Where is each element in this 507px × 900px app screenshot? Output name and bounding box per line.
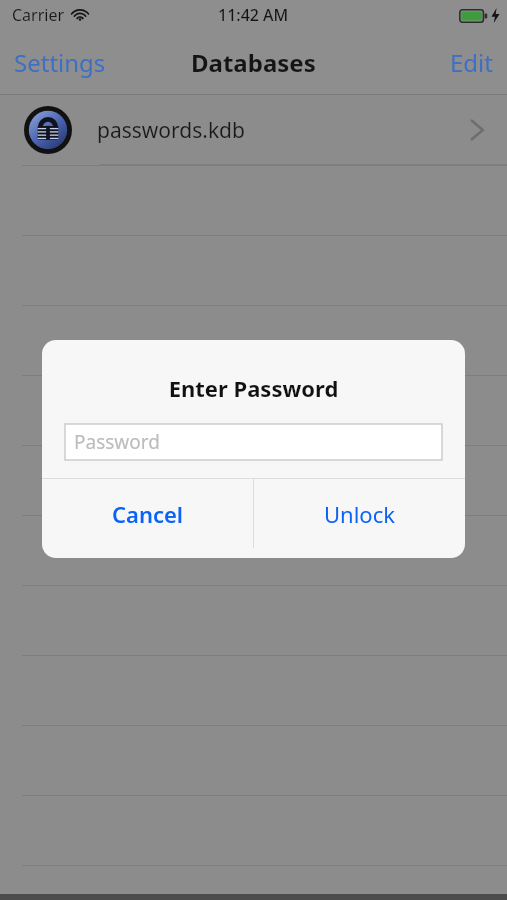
button[interactable]: Settings <box>14 46 106 79</box>
staticText: Edit <box>450 46 493 79</box>
staticText: Unlock <box>324 499 395 529</box>
staticText: passwords.kdb <box>97 116 245 145</box>
staticText: 11:42 AM <box>218 4 289 26</box>
button[interactable]: Unlock <box>254 479 465 548</box>
button[interactable]: Cancel <box>42 479 253 548</box>
button[interactable]: Password <box>65 424 442 460</box>
staticText: Enter Password <box>42 373 465 403</box>
staticText: Databases <box>191 46 316 79</box>
button[interactable]: passwords.kdb <box>0 95 507 165</box>
staticText: Password <box>74 429 160 455</box>
staticText: Settings <box>14 46 106 79</box>
button[interactable]: Edit <box>450 46 493 79</box>
staticText: Cancel <box>112 499 184 529</box>
other: Open passwords.kdb <box>469 117 485 143</box>
staticText: Carrier <box>12 4 65 26</box>
